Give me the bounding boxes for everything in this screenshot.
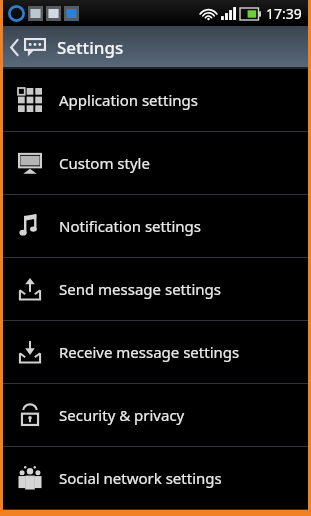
staticText: Social network settings bbox=[59, 468, 222, 488]
staticText: Security & privacy bbox=[59, 405, 185, 425]
staticText: Notification settings bbox=[59, 216, 201, 236]
button[interactable]: Notification settings bbox=[3, 195, 308, 257]
button[interactable]: Receive message settings bbox=[3, 321, 308, 383]
staticText: Settings bbox=[57, 36, 124, 59]
button[interactable]: Application settings bbox=[3, 69, 308, 131]
button[interactable]: Back bbox=[9, 36, 308, 59]
staticText: 17:39 bbox=[266, 4, 302, 23]
button[interactable]: Send message settings bbox=[3, 258, 308, 320]
button[interactable]: Security & privacy bbox=[3, 384, 308, 446]
staticText: Receive message settings bbox=[59, 342, 240, 362]
staticText: Application settings bbox=[59, 90, 198, 110]
button[interactable]: Custom style bbox=[3, 132, 308, 194]
staticText: Send message settings bbox=[59, 279, 221, 299]
button[interactable]: Social network settings bbox=[3, 447, 308, 509]
staticText: Custom style bbox=[59, 153, 150, 173]
